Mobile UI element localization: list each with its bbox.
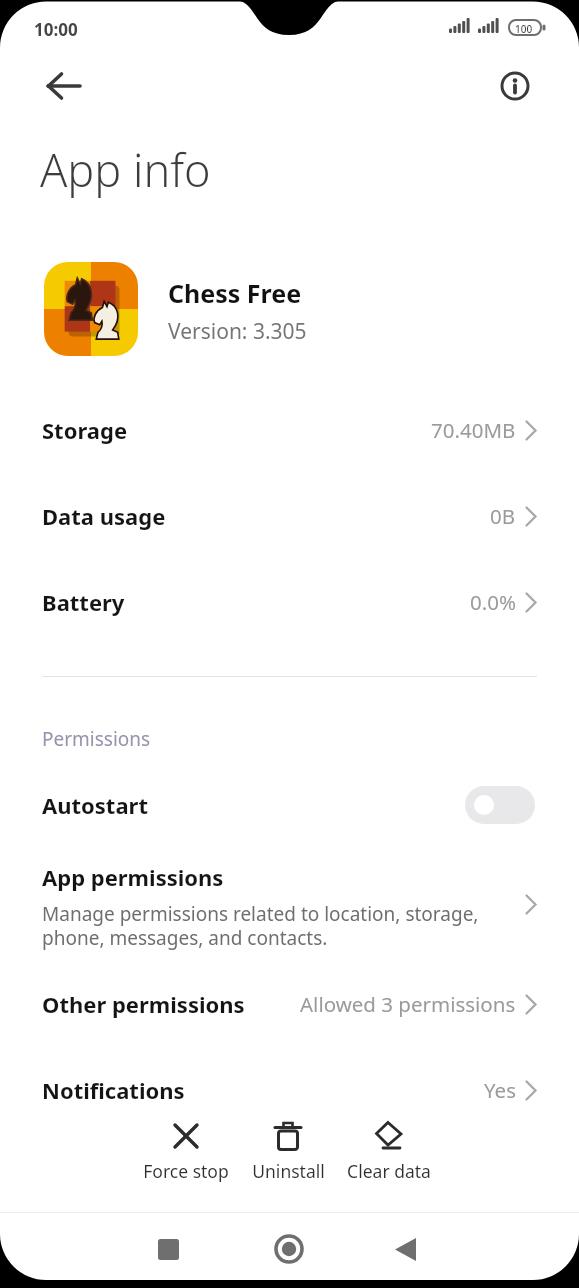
staticText: 0.0% [470, 588, 516, 616]
staticText: Permissions [42, 726, 151, 752]
staticText: Chess Free [168, 276, 302, 310]
staticText: Battery [42, 587, 125, 617]
button[interactable] [375, 1219, 435, 1279]
staticText: 0B [490, 502, 516, 530]
staticText: Uninstall [252, 1159, 325, 1183]
button[interactable]: Autostart [0, 762, 579, 848]
button[interactable]: App permissions [0, 848, 579, 961]
staticText: App permissions [42, 862, 224, 892]
staticText: Allowed 3 permissions [300, 990, 516, 1018]
button[interactable] [259, 1219, 319, 1279]
button[interactable]: Storage [0, 387, 579, 473]
staticText: App info [40, 139, 211, 200]
staticText: Force stop [143, 1159, 229, 1183]
staticText: Notifications [42, 1075, 185, 1105]
button[interactable]: Force stop [131, 1113, 241, 1183]
staticText: 10:00 [34, 18, 78, 41]
button[interactable] [489, 61, 541, 111]
staticText: 100 [515, 22, 533, 36]
button[interactable]: Data usage [0, 473, 579, 559]
staticText: Autostart [42, 790, 148, 820]
button[interactable]: Battery [0, 559, 579, 645]
button[interactable]: Uninstall [233, 1113, 343, 1183]
button[interactable]: Clear data [334, 1113, 444, 1183]
staticText: Data usage [42, 501, 166, 531]
button[interactable] [36, 61, 92, 111]
staticText: Other permissions [42, 989, 245, 1019]
button[interactable]: Notifications [0, 1047, 579, 1133]
staticText: Yes [484, 1076, 516, 1104]
staticText: Clear data [347, 1159, 431, 1183]
button[interactable]: Other permissions [0, 961, 579, 1047]
staticText: Version: 3.305 [168, 317, 307, 346]
staticText: 70.40MB [431, 416, 516, 444]
button[interactable] [138, 1219, 198, 1279]
staticText: Manage permissions related to location, … [42, 901, 479, 950]
staticText: Storage [42, 415, 128, 445]
